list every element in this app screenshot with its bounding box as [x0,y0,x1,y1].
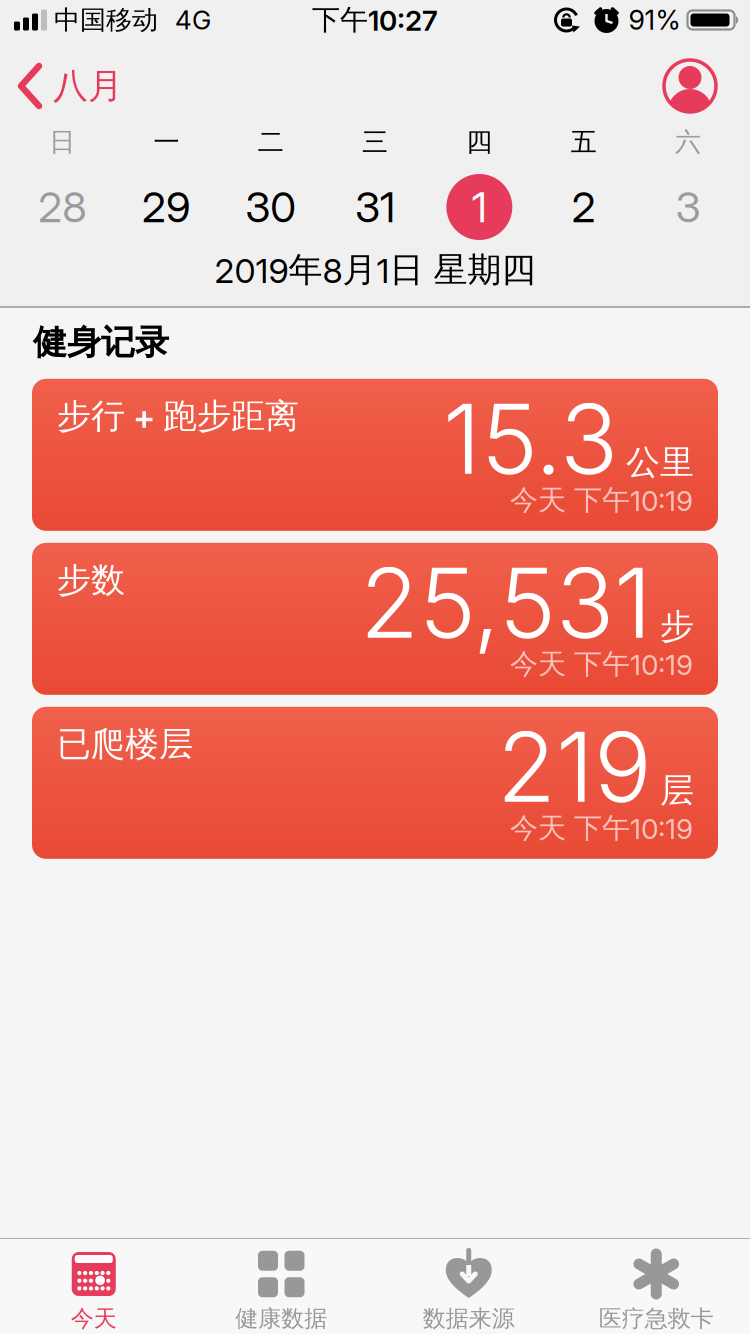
button[interactable]: 8月29日 [114,170,219,244]
staticText: 31 [355,182,395,232]
staticText: 层 [660,769,694,812]
button[interactable]: 步行 + 跑步距离 [32,379,718,531]
staticText: 四 [466,126,492,158]
button[interactable]: 8月28日 [10,170,114,244]
staticText: 数据来源 [423,1304,515,1333]
button[interactable]: 健康数据 [187,1248,375,1333]
staticText: 219 [497,709,652,825]
staticText: 二 [258,126,284,158]
staticText: 3 [675,182,700,232]
staticText: 下午10:27 [312,2,438,38]
button[interactable]: 8月3日 [636,170,740,244]
button[interactable]: 返回八月 [18,64,123,108]
staticText: 4G [175,4,211,36]
staticText: 日 [49,126,75,158]
staticText: 91% [628,4,680,36]
staticText: 三 [362,126,388,158]
staticText: 28 [38,182,86,232]
staticText: 15.3 [443,381,618,497]
staticText: 一 [153,126,179,158]
button[interactable]: 医疗急救卡 [562,1248,750,1333]
staticText: 中国移动 [54,4,158,36]
staticText: 1 [472,182,487,232]
staticText: 今天 [71,1304,117,1333]
staticText: 六 [675,126,701,158]
button[interactable]: 今天 [0,1248,187,1333]
staticText: 五 [571,126,597,158]
staticText: 30 [245,182,296,232]
staticText: 今天 下午10:19 [510,647,693,682]
staticText: 健身记录 [33,321,169,364]
staticText: 公里 [626,441,694,484]
staticText: 今天 下午10:19 [510,811,693,846]
button[interactable]: 已爬楼层 [32,707,718,859]
staticText: 八月 [53,64,123,108]
button[interactable]: 8月31日 [323,170,427,244]
staticText: 医疗急救卡 [599,1304,714,1333]
staticText: 2019年8月1日 星期四 [214,249,535,291]
staticText: 健康数据 [235,1304,327,1333]
staticText: 步行 + 跑步距离 [57,395,299,438]
staticText: 步数 [57,559,125,602]
button[interactable]: 个人资料 [664,60,716,112]
staticText: 步 [660,605,694,648]
staticText: 今天 下午10:19 [510,483,693,518]
staticText: 29 [142,182,191,232]
staticText: 25,531 [360,545,652,661]
button[interactable]: 步数 [32,543,718,695]
button[interactable]: 8月30日 [219,170,323,244]
staticText: 2 [572,182,596,232]
button[interactable]: 8月2日 [531,170,636,244]
button[interactable]: 数据来源 [375,1248,562,1333]
button[interactable]: 8月1日 [427,170,531,244]
staticText: 已爬楼层 [57,723,193,766]
